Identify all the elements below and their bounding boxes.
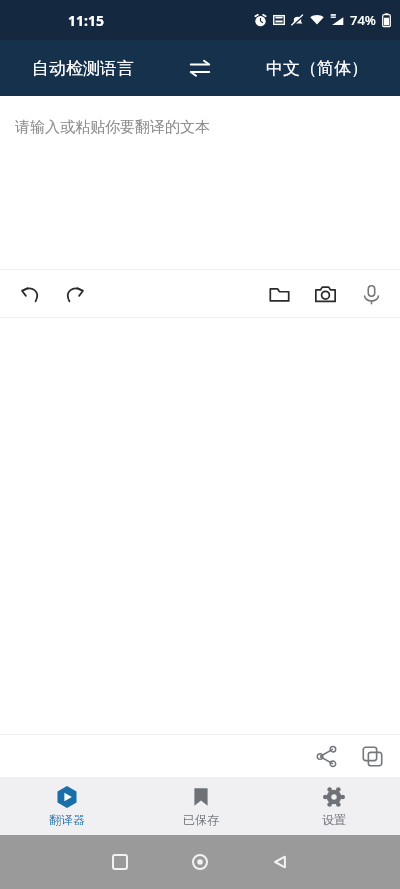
button[interactable]: Back [260, 842, 300, 882]
staticText: 已保存 [183, 812, 219, 827]
staticText: 请输入或粘贴你要翻译的文本 [15, 118, 210, 137]
staticText: 设置 [322, 812, 346, 827]
button[interactable]: Share [306, 736, 346, 776]
staticText: 11:15 [68, 11, 104, 30]
staticText: 74% [350, 11, 376, 29]
button[interactable]: Redo [52, 272, 96, 316]
button[interactable]: Recents [100, 842, 140, 882]
button[interactable]: 已保存 [134, 777, 267, 835]
button[interactable]: Home [180, 842, 220, 882]
button[interactable]: 设置 [267, 777, 400, 835]
button[interactable]: Swap languages [181, 49, 219, 87]
button[interactable]: 翻译器 [0, 777, 134, 835]
staticText: 翻译器 [49, 812, 85, 827]
button[interactable]: Undo [8, 272, 52, 316]
button[interactable]: Copy [352, 736, 392, 776]
button[interactable]: 自动检测语言 [22, 52, 144, 85]
staticText: 自动检测语言 [32, 58, 134, 79]
staticText: 中文（简体） [266, 58, 368, 79]
button[interactable]: Camera [302, 271, 348, 317]
button[interactable]: 请输入或粘贴你要翻译的文本 [0, 96, 400, 269]
button[interactable]: Open file [256, 271, 302, 317]
button[interactable]: Voice input [348, 271, 394, 317]
button[interactable]: 中文（简体） [256, 52, 378, 85]
